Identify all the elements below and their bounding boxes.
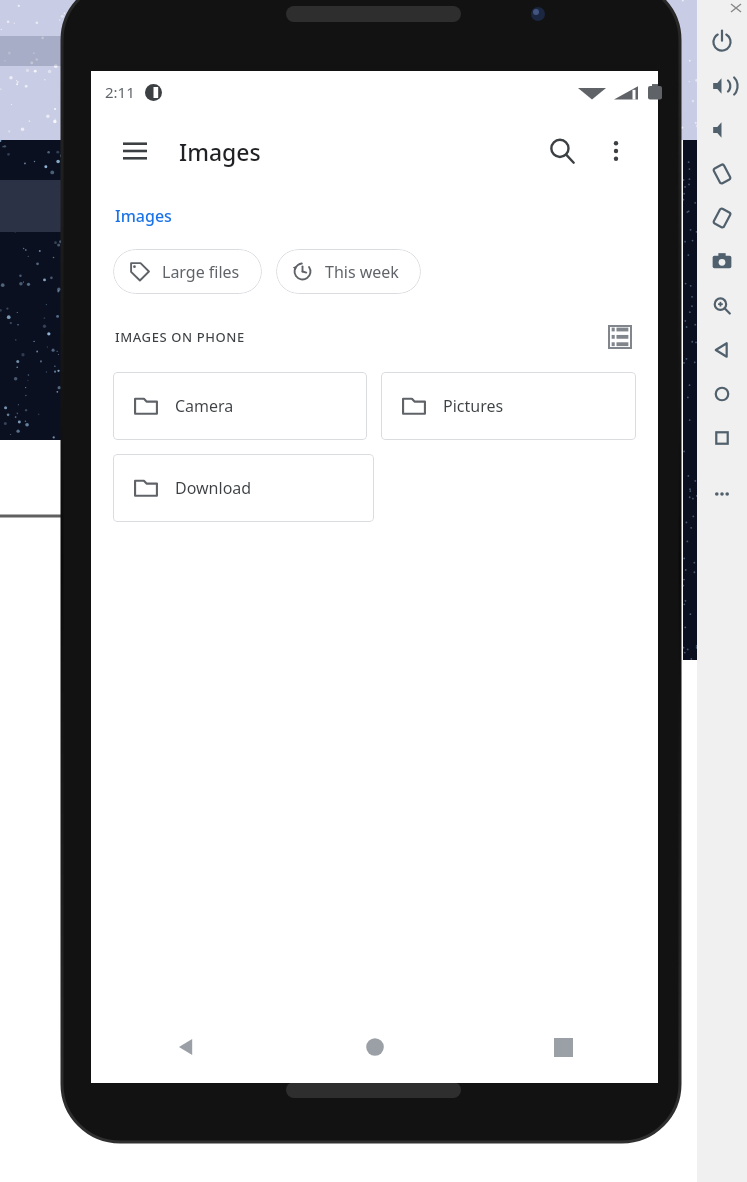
button[interactable]: Back (91, 1011, 280, 1083)
button[interactable]: Overview (700, 416, 744, 460)
staticText: This week (325, 261, 399, 283)
staticText: Large files (162, 261, 240, 283)
staticText: Images (179, 136, 261, 167)
button[interactable]: Overview (469, 1011, 658, 1083)
button[interactable]: This week (276, 249, 421, 294)
button[interactable]: Open navigation menu (111, 127, 159, 175)
button[interactable]: Home (700, 372, 744, 416)
staticText: Camera (175, 395, 234, 417)
button[interactable]: Rotate left (700, 152, 744, 196)
button[interactable]: Home (280, 1011, 469, 1083)
button[interactable]: Search (538, 127, 586, 175)
button[interactable]: Back (700, 328, 744, 372)
button[interactable]: Screenshot (700, 240, 744, 284)
button[interactable]: More options (592, 127, 640, 175)
staticText: Download (175, 477, 252, 499)
button[interactable]: Rotate right (700, 196, 744, 240)
button[interactable]: Download (113, 454, 374, 522)
button[interactable]: Camera (113, 372, 367, 440)
button[interactable]: Zoom (700, 284, 744, 328)
button[interactable]: Pictures (381, 372, 636, 440)
button[interactable]: Power (700, 20, 744, 64)
staticText: IMAGES ON PHONE (115, 328, 245, 346)
button[interactable]: Images (115, 205, 172, 227)
staticText: Images (115, 205, 172, 227)
button[interactable]: Large files (113, 249, 262, 294)
staticText: Pictures (443, 395, 504, 417)
staticText: 2:11 (105, 82, 135, 102)
button[interactable]: Volume up (700, 64, 744, 108)
button[interactable]: Switch to list view (600, 320, 640, 354)
button[interactable]: Volume down (700, 108, 744, 152)
button[interactable]: More (700, 472, 744, 516)
